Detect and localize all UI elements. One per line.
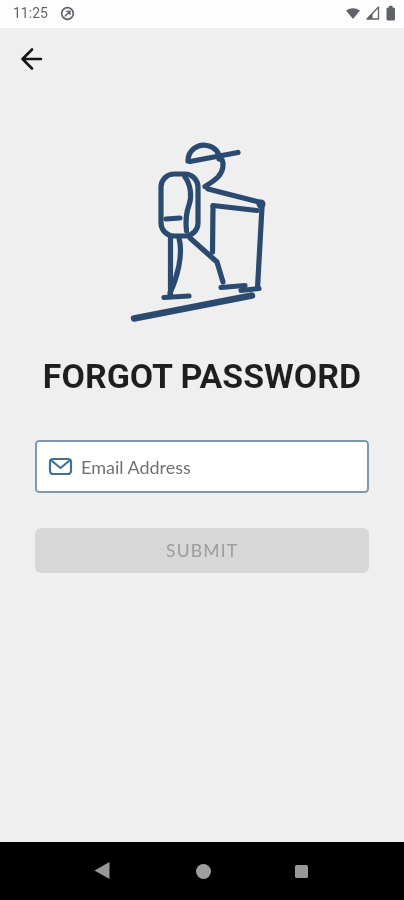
button[interactable] [82,850,122,890]
button[interactable]: SUBMIT [35,528,369,573]
staticText: 11:25 [13,5,48,21]
staticText: SUBMIT [166,540,239,561]
button[interactable] [183,851,223,891]
staticText: Email Address [81,456,191,478]
staticText: FORGOT PASSWORD [0,356,404,396]
button[interactable] [20,47,44,71]
button[interactable]: Email Address [35,440,369,493]
button[interactable] [281,851,321,891]
